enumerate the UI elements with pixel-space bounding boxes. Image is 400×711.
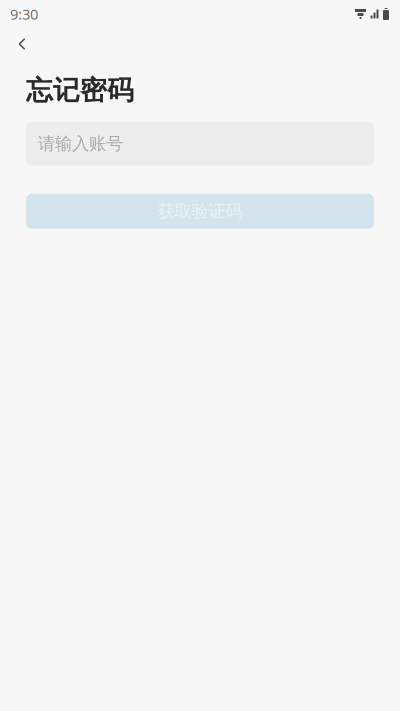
staticText: 9:30 xyxy=(10,4,38,24)
button[interactable]: Back xyxy=(2,28,42,60)
button[interactable]: 获取验证码 xyxy=(26,194,374,229)
staticText: 请输入账号 xyxy=(38,133,123,154)
staticText: 获取验证码 xyxy=(157,201,242,222)
staticText: 忘记密码 xyxy=(26,74,134,107)
